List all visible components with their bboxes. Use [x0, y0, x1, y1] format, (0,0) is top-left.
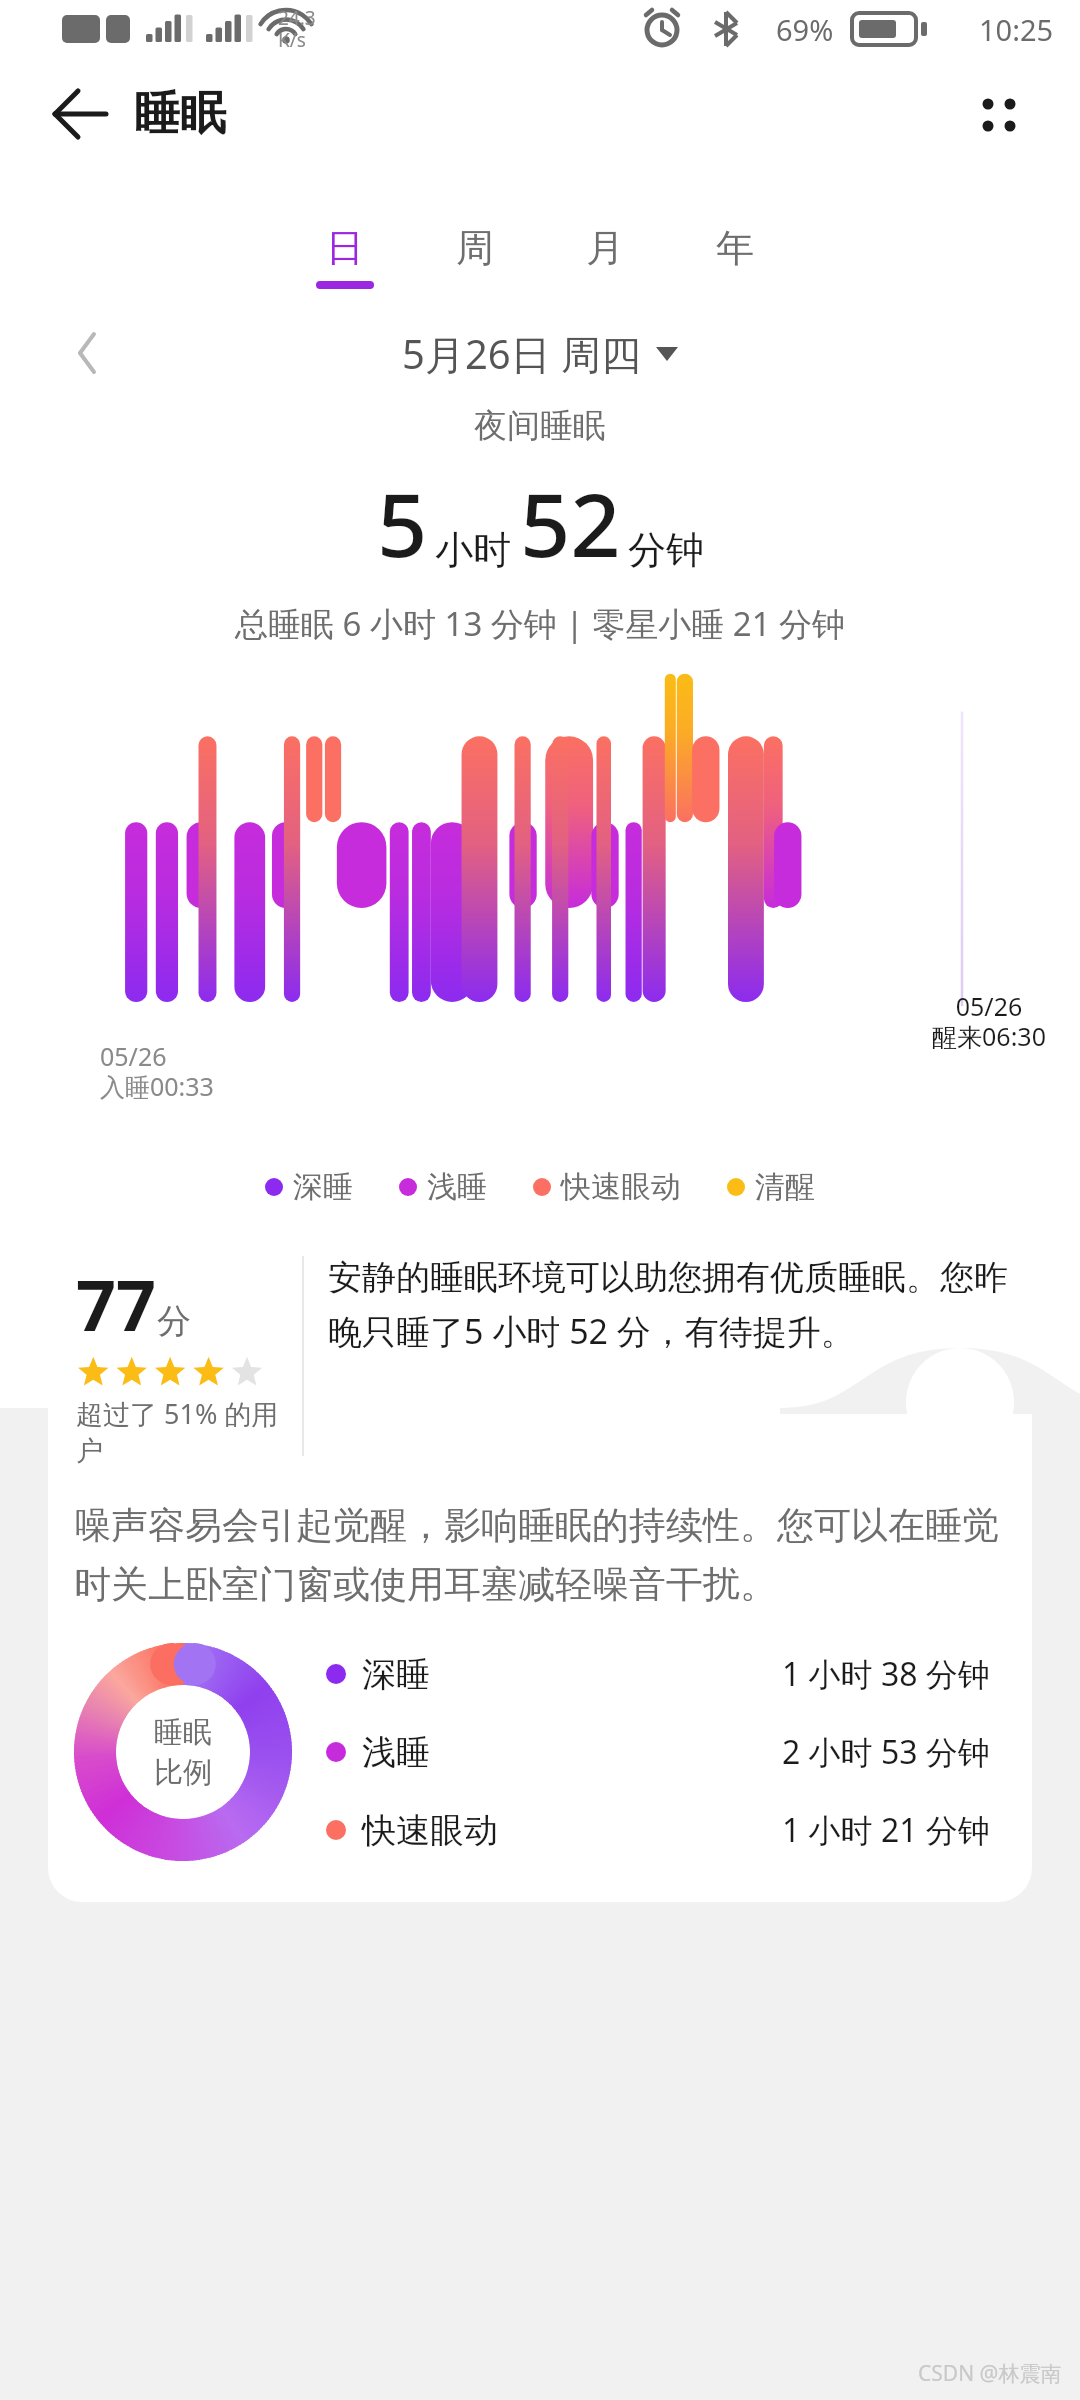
button[interactable]: 77	[48, 1228, 1032, 1902]
staticText: 总睡眠 6 小时 13 分钟 | 零星小睡 21 分钟	[0, 601, 1080, 646]
staticText: 睡眠	[134, 85, 226, 143]
button[interactable]: 清醒	[727, 1168, 815, 1206]
button[interactable]: 快速眼动	[533, 1168, 681, 1206]
staticText: 05/26 入睡00:33	[100, 1039, 214, 1104]
staticText: 快速眼动	[362, 1809, 498, 1852]
staticText: 夜间睡眠	[0, 405, 1080, 447]
staticText: 05/26 醒来06:30	[932, 989, 1046, 1054]
staticText: 5月26日 周四	[402, 326, 642, 381]
staticText: 月	[540, 224, 670, 272]
staticText: 分钟	[628, 526, 704, 574]
button[interactable]: 年	[670, 224, 800, 289]
button[interactable]: 浅睡	[326, 1716, 1012, 1788]
staticText: 69%	[776, 10, 834, 49]
staticText: 小时	[435, 526, 511, 574]
staticText: 日	[280, 224, 410, 272]
staticText: 24.3 K/s	[278, 5, 316, 53]
staticText: 分	[157, 1300, 191, 1343]
staticText: 10:25	[979, 10, 1054, 49]
staticText: 超过了 51% 的用户	[76, 1395, 302, 1468]
staticText: 安静的睡眠环境可以助您拥有优质睡眠。您昨晚只睡了5 小时 52 分，有待提升。	[328, 1256, 1008, 1354]
staticText: 52	[520, 463, 621, 583]
button[interactable]: 日	[280, 224, 410, 289]
staticText: 周	[410, 224, 540, 272]
button[interactable]: Previous day	[62, 324, 120, 382]
staticText: 1 小时 38 分钟	[782, 1652, 990, 1696]
staticText: 5	[377, 463, 428, 583]
staticText: 清醒	[755, 1168, 815, 1206]
button[interactable]: 周	[410, 224, 540, 289]
staticText: 1 小时 21 分钟	[782, 1808, 990, 1852]
staticText: 噪声容易会引起觉醒，影响睡眠的持续性。您可以在睡觉时关上卧室门窗或使用耳塞减轻噪…	[74, 1502, 1006, 1608]
button[interactable]: More options	[960, 76, 1036, 152]
button[interactable]: Back	[46, 76, 122, 152]
staticText: 2 小时 53 分钟	[782, 1730, 990, 1774]
button[interactable]: 深睡	[326, 1638, 1012, 1710]
staticText: 浅睡	[427, 1168, 487, 1206]
button[interactable]: 快速眼动	[326, 1794, 1012, 1866]
staticText: CSDN @林震南	[918, 2359, 1062, 2388]
staticText: 睡眠 比例	[154, 1714, 212, 1790]
staticText: 深睡	[293, 1168, 353, 1206]
staticText: 深睡	[362, 1653, 430, 1696]
staticText: 年	[670, 224, 800, 272]
staticText: 浅睡	[362, 1731, 430, 1774]
button[interactable]: 5月26日 周四	[402, 326, 678, 381]
button[interactable]: 月	[540, 224, 670, 289]
button[interactable]: 浅睡	[399, 1168, 487, 1206]
staticText: 77	[76, 1256, 157, 1351]
staticText: 快速眼动	[561, 1168, 681, 1206]
button[interactable]: 深睡	[265, 1168, 353, 1206]
